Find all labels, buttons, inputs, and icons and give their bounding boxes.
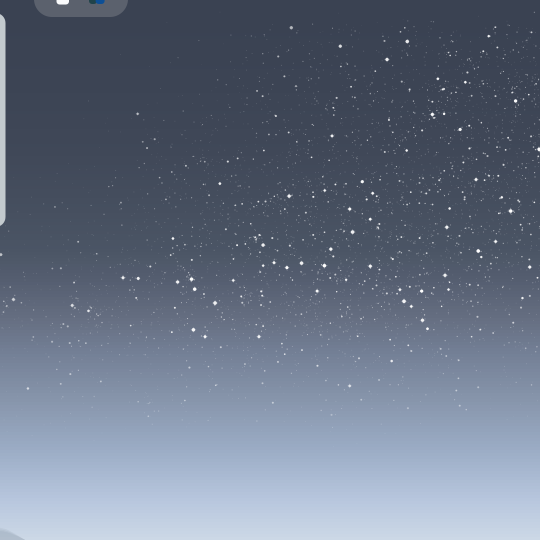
button[interactable]: Open panel [0,13,5,227]
button[interactable]: App folder [34,0,128,17]
